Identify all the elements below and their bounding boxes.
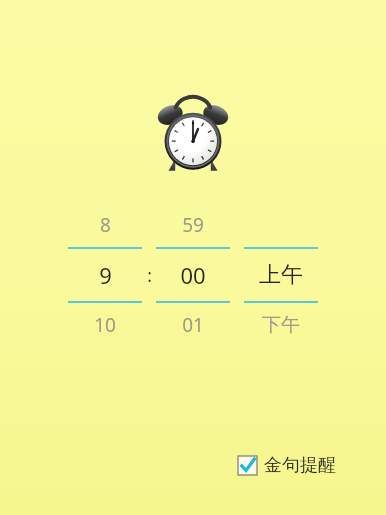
button[interactable]: 下午 xyxy=(244,303,318,347)
other: Alarm clock xyxy=(154,86,232,178)
button[interactable]: 8 xyxy=(68,203,142,247)
button[interactable]: 金句提醒 xyxy=(234,450,340,481)
button[interactable]: 59 xyxy=(156,203,230,247)
staticText: 下午 xyxy=(262,313,300,337)
staticText: : xyxy=(147,263,152,287)
staticText: 金句提醒 xyxy=(264,454,336,477)
staticText: 59 xyxy=(182,212,204,238)
button[interactable]: 上午 xyxy=(244,249,318,301)
staticText: 上午 xyxy=(259,261,303,289)
staticText: 01 xyxy=(182,312,204,338)
button[interactable]: 10 xyxy=(68,303,142,347)
staticText: 10 xyxy=(94,312,116,338)
staticText: 9 xyxy=(99,260,112,290)
staticText: 8 xyxy=(100,212,111,238)
button[interactable]: 9 xyxy=(68,249,142,301)
button[interactable]: 01 xyxy=(156,303,230,347)
staticText: 00 xyxy=(180,260,206,290)
button[interactable]: 00 xyxy=(156,249,230,301)
